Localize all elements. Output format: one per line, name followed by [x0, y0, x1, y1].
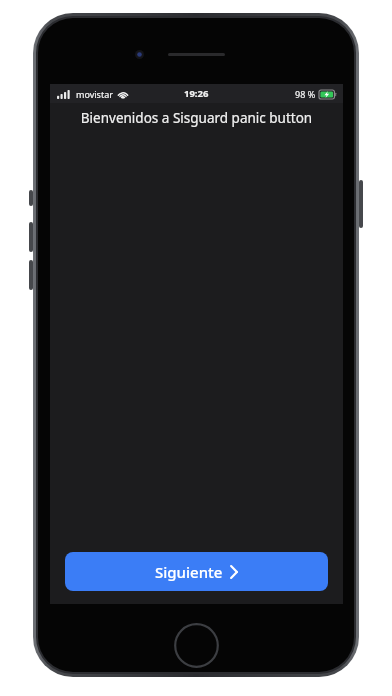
button[interactable]: Home — [174, 623, 219, 668]
staticText: Siguiente — [155, 562, 223, 582]
button[interactable]: Siguiente — [65, 552, 328, 591]
staticText: 19:26 — [184, 87, 209, 100]
staticText: 98 % — [295, 88, 316, 100]
staticText: movistar — [76, 88, 113, 100]
staticText: Bienvenidos a Sisguard panic button — [50, 109, 343, 127]
